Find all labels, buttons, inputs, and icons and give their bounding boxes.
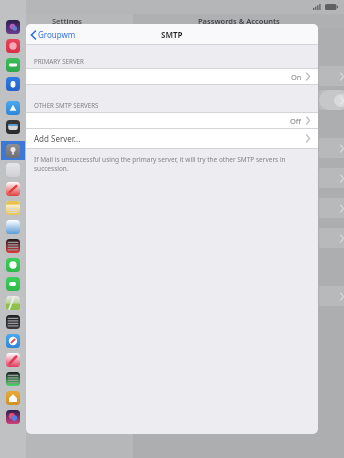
button[interactable]: On — [26, 69, 318, 84]
button[interactable]: App 18 — [6, 353, 20, 367]
button[interactable]: App 9 — [6, 182, 20, 196]
button[interactable]: App 7 — [6, 144, 20, 158]
button[interactable]: App 6 — [6, 120, 20, 134]
staticText: PRIMARY SERVER — [34, 57, 84, 65]
button[interactable]: App 17 — [6, 334, 20, 348]
staticText: Groupwm — [38, 29, 76, 40]
staticText: Add Server... — [34, 133, 81, 144]
button[interactable]: App 11 — [6, 220, 20, 234]
button[interactable]: App 3 — [6, 58, 20, 72]
button[interactable]: Off — [26, 113, 318, 128]
button[interactable]: App 8 — [6, 163, 20, 177]
button[interactable]: Groupwm — [26, 26, 82, 43]
button[interactable]: App 21 — [6, 410, 20, 424]
staticText: SMTP — [161, 29, 183, 40]
button[interactable]: App 19 — [6, 372, 20, 386]
button[interactable]: App 1 — [6, 20, 20, 34]
staticText: If Mail is unsuccessful using the primar… — [34, 155, 308, 173]
staticText: OTHER SMTP SERVERS — [34, 101, 99, 109]
button[interactable]: App 4 — [6, 77, 20, 91]
button[interactable]: App 2 — [6, 39, 20, 53]
button[interactable]: App 14 — [6, 277, 20, 291]
button[interactable]: App 13 — [6, 258, 20, 272]
staticText: On — [291, 72, 302, 82]
staticText: Passwords & Accounts — [198, 16, 280, 26]
button[interactable]: App 10 — [6, 201, 20, 215]
staticText: Off — [290, 116, 302, 126]
button[interactable]: App 16 — [6, 315, 20, 329]
button[interactable]: App 20 — [6, 391, 20, 405]
button[interactable]: Add Server... — [26, 129, 318, 148]
button[interactable]: App 12 — [6, 239, 20, 253]
button[interactable]: App 5 — [6, 101, 20, 115]
button[interactable]: App 15 — [6, 296, 20, 310]
staticText: Settings — [52, 16, 82, 26]
